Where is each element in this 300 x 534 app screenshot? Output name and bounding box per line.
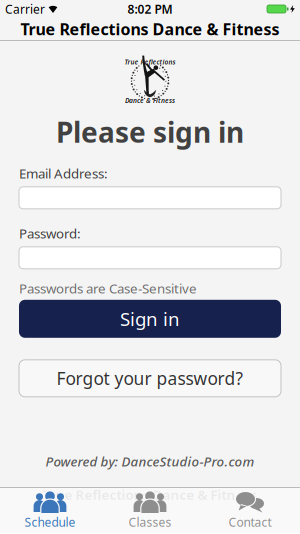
button[interactable]: Classes: [100, 488, 200, 533]
button[interactable]: Password: [0, 247, 300, 269]
staticText: Email Address:: [19, 164, 108, 182]
staticText: True Reflections: [124, 57, 175, 66]
staticText: Passwords are Case-Sensitive: [19, 279, 197, 297]
staticText: Schedule: [24, 514, 75, 530]
staticText: Please sign in: [56, 113, 244, 150]
staticText: 8:02 PM: [127, 1, 172, 17]
button[interactable]: Contact: [200, 488, 300, 533]
staticText: Forgot your password?: [56, 367, 243, 390]
button[interactable]: Sign in: [0, 300, 300, 338]
button[interactable]: Email Address: [0, 187, 300, 209]
staticText: True Reflections Dance & Fitness: [20, 18, 279, 40]
staticText: Contact: [228, 514, 271, 530]
button[interactable]: Schedule: [0, 488, 100, 533]
staticText: Sign in: [120, 306, 180, 331]
staticText: Classes: [128, 514, 171, 530]
staticText: Password:: [19, 224, 81, 242]
staticText: True Reflections Dance & Fitness: [42, 486, 257, 503]
button[interactable]: Powered by: DanceStudio-Pro.com: [45, 452, 254, 470]
button[interactable]: Forgot your password?: [0, 360, 300, 397]
staticText: Powered by: DanceStudio-Pro.com: [45, 452, 254, 470]
staticText: Dance & Fitness: [125, 96, 175, 105]
staticText: Carrier: [5, 1, 45, 17]
